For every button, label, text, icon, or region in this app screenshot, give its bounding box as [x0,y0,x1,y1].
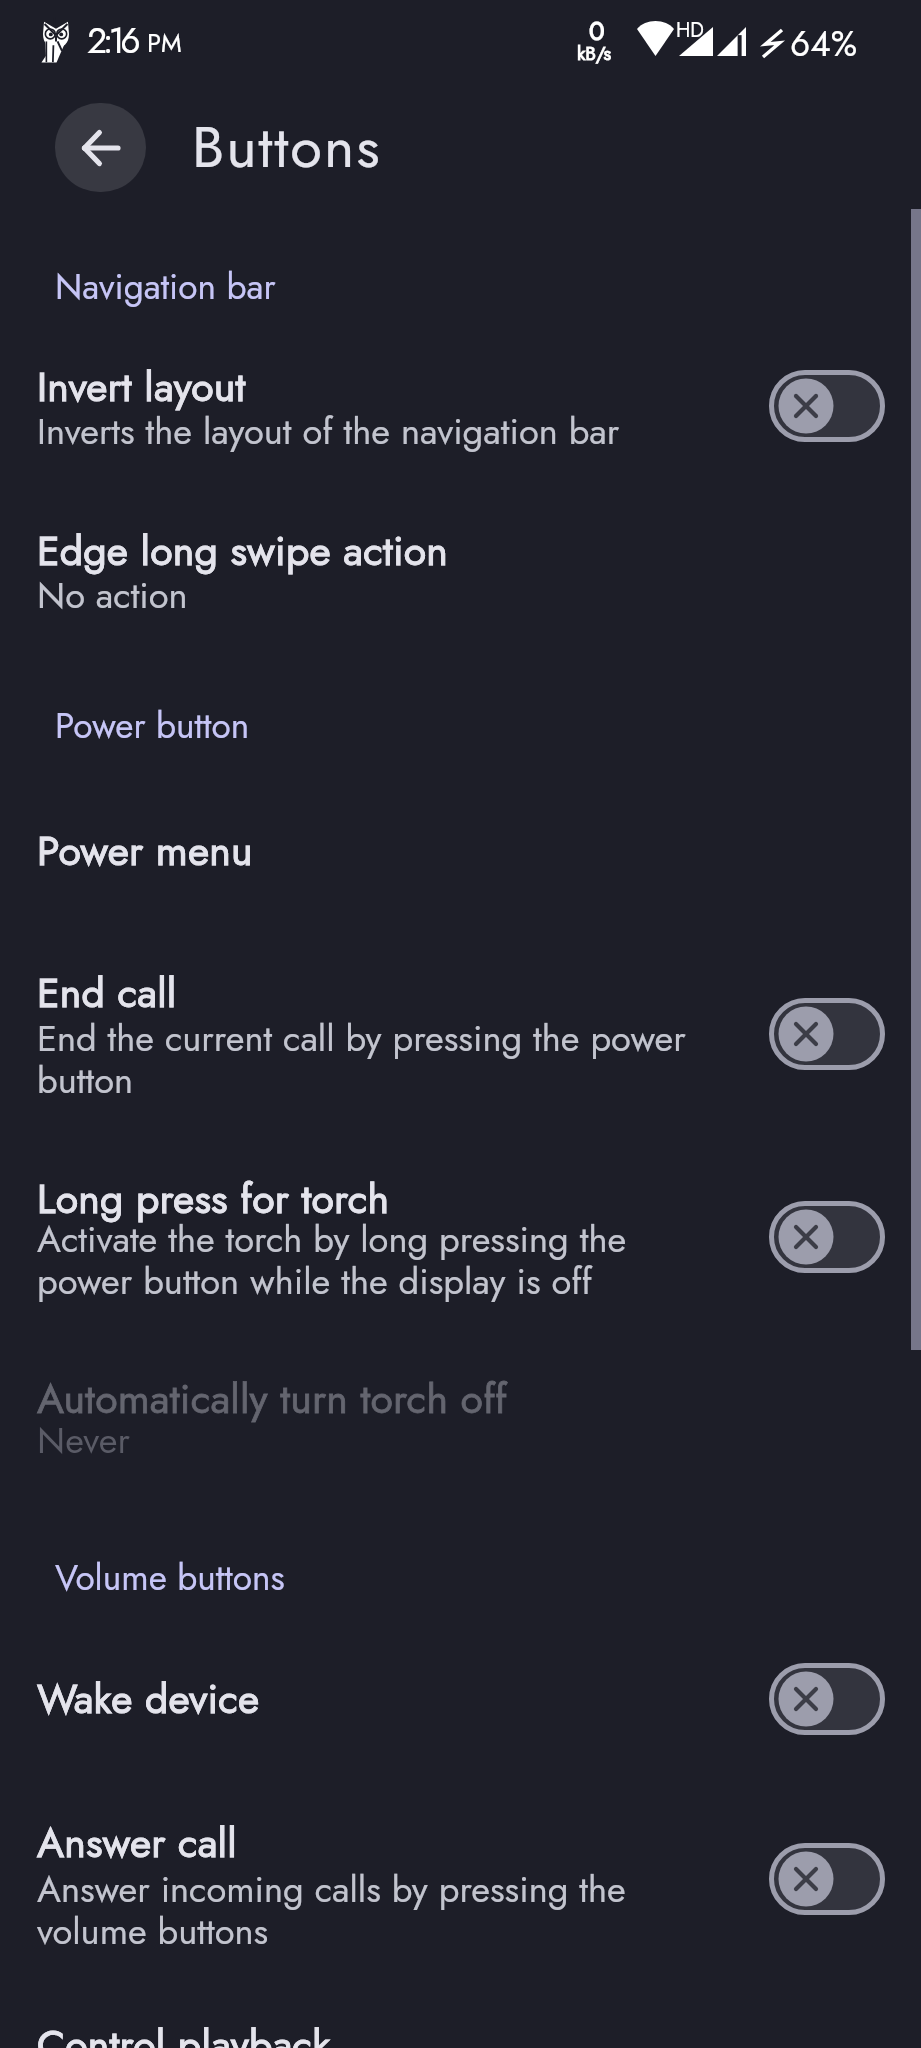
staticText: Invert layout [37,357,246,416]
staticText: Inverts the layout of the navigation bar [37,405,620,457]
button[interactable]: Volume buttons [55,1552,285,1603]
button[interactable] [0,818,921,892]
button[interactable] [0,2012,921,2048]
staticText: Wake device [37,1669,260,1728]
staticText: Long press for torch [37,1169,390,1228]
button[interactable]: Toggle off [769,1663,885,1735]
staticText: Control playback [37,2015,331,2048]
staticText: 2:16 [87,15,137,66]
button[interactable] [0,1166,921,1287]
staticText: HD [676,16,704,45]
button[interactable] [0,960,921,1086]
staticText: Power button [55,700,250,751]
button[interactable]: Toggle off [769,370,885,442]
staticText: Answer incoming calls by pressing the vo… [37,1863,702,1957]
button[interactable]: Navigate up [55,103,146,192]
staticText: Navigation bar [55,261,276,312]
staticText: End call [37,963,177,1022]
button[interactable] [0,1366,921,1488]
staticText: Buttons [192,105,382,189]
staticText: Invert layout [37,357,246,416]
staticText: Automatically turn torch off [37,1369,507,1428]
staticText: End call [37,963,177,1022]
staticText: Automatically turn torch off [37,1369,507,1428]
button[interactable]: Power button [55,700,250,751]
staticText: End the current call by pressing the pow… [37,1012,702,1106]
staticText: Never [37,1414,130,1466]
staticText: 0 [589,12,605,50]
staticText: Long press for torch [37,1169,390,1228]
staticText: Edge long swipe action [37,521,449,580]
staticText: kB/s [577,40,612,67]
staticText: Volume buttons [55,1552,285,1603]
staticText: PM [147,25,182,62]
staticText: Wake device [37,1669,260,1728]
button[interactable] [0,354,921,479]
staticText: Power menu [37,821,253,880]
button[interactable]: Navigation bar [55,261,276,312]
button[interactable]: Toggle off [769,1201,885,1273]
staticText: Activate the torch by long pressing the … [37,1213,702,1307]
button[interactable] [0,1666,921,1740]
button[interactable]: Toggle off [769,1843,885,1915]
button[interactable] [0,518,921,643]
staticText: Power menu [37,821,253,880]
button[interactable]: Toggle off [769,998,885,1070]
staticText: Edge long swipe action [37,521,449,580]
staticText: No action [37,569,188,621]
staticText: Answer call [37,1813,237,1872]
button[interactable] [0,1810,921,1936]
staticText: 64% [790,18,858,69]
staticText: Control playback [37,2015,331,2048]
staticText: Answer call [37,1813,237,1872]
